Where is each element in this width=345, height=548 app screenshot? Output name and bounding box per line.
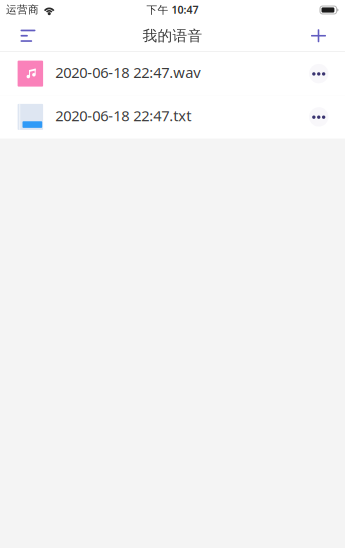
staticText: 2020-06-18 22:47.txt <box>55 106 191 125</box>
staticText: 运营商 <box>6 3 39 16</box>
button[interactable]: 2020-06-18 22:47.wav <box>0 52 345 95</box>
staticText: 2020-06-18 22:47.wav <box>55 63 200 82</box>
staticText: 下午 10:47 <box>146 2 198 17</box>
button[interactable]: Menu <box>8 20 48 51</box>
button[interactable]: Add <box>298 20 338 51</box>
staticText: 我的语音 <box>142 27 202 45</box>
button[interactable]: 2020-06-18 22:47.txt <box>0 95 345 138</box>
